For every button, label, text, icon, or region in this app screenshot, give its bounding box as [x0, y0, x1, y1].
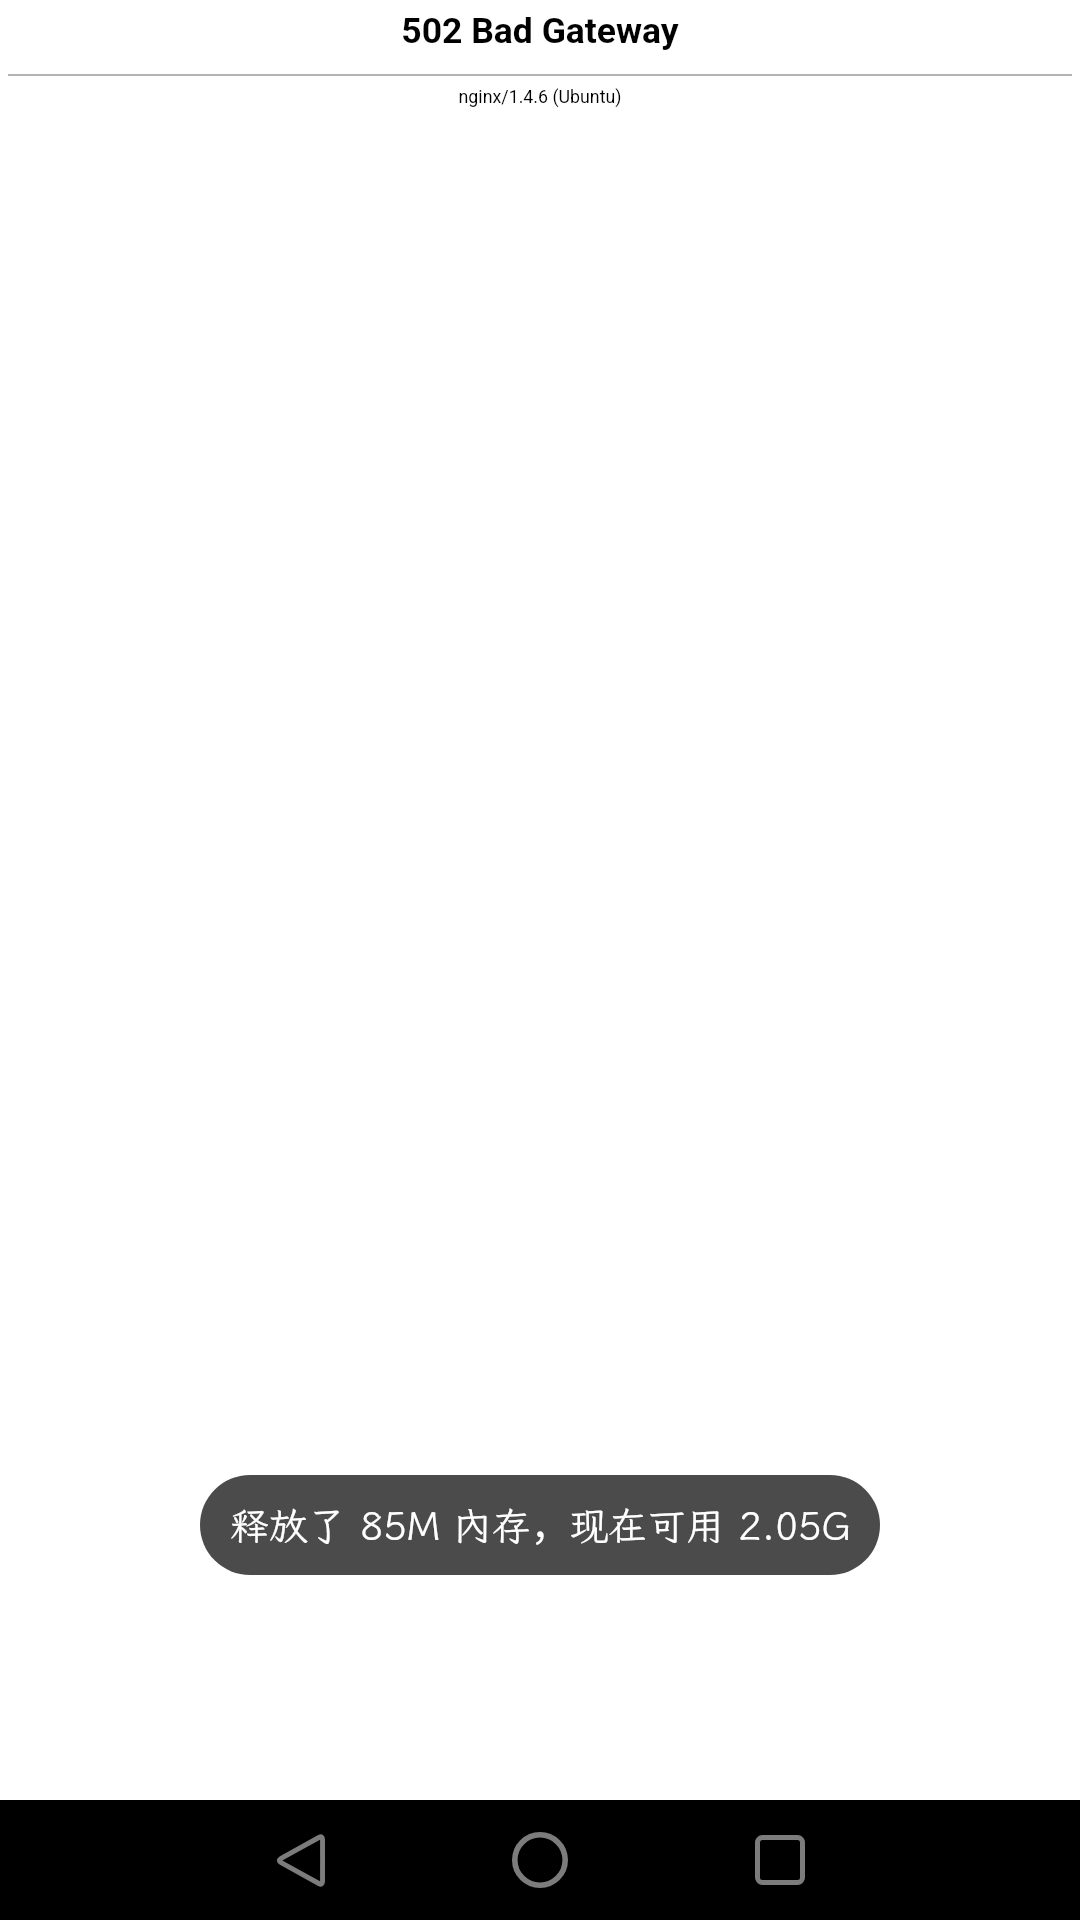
button[interactable]: 释放了 85M 内存，现在可用 2.05G — [200, 1475, 880, 1575]
button[interactable]: Home — [420, 1800, 660, 1920]
button[interactable]: Recent apps — [660, 1800, 1080, 1920]
staticText: 释放了 85M 内存，现在可用 2.05G — [230, 1495, 851, 1551]
staticText: nginx/1.4.6 (Ubuntu) — [458, 86, 622, 107]
staticText: 502 Bad Gateway — [401, 10, 679, 52]
button[interactable]: Back — [0, 1800, 420, 1920]
